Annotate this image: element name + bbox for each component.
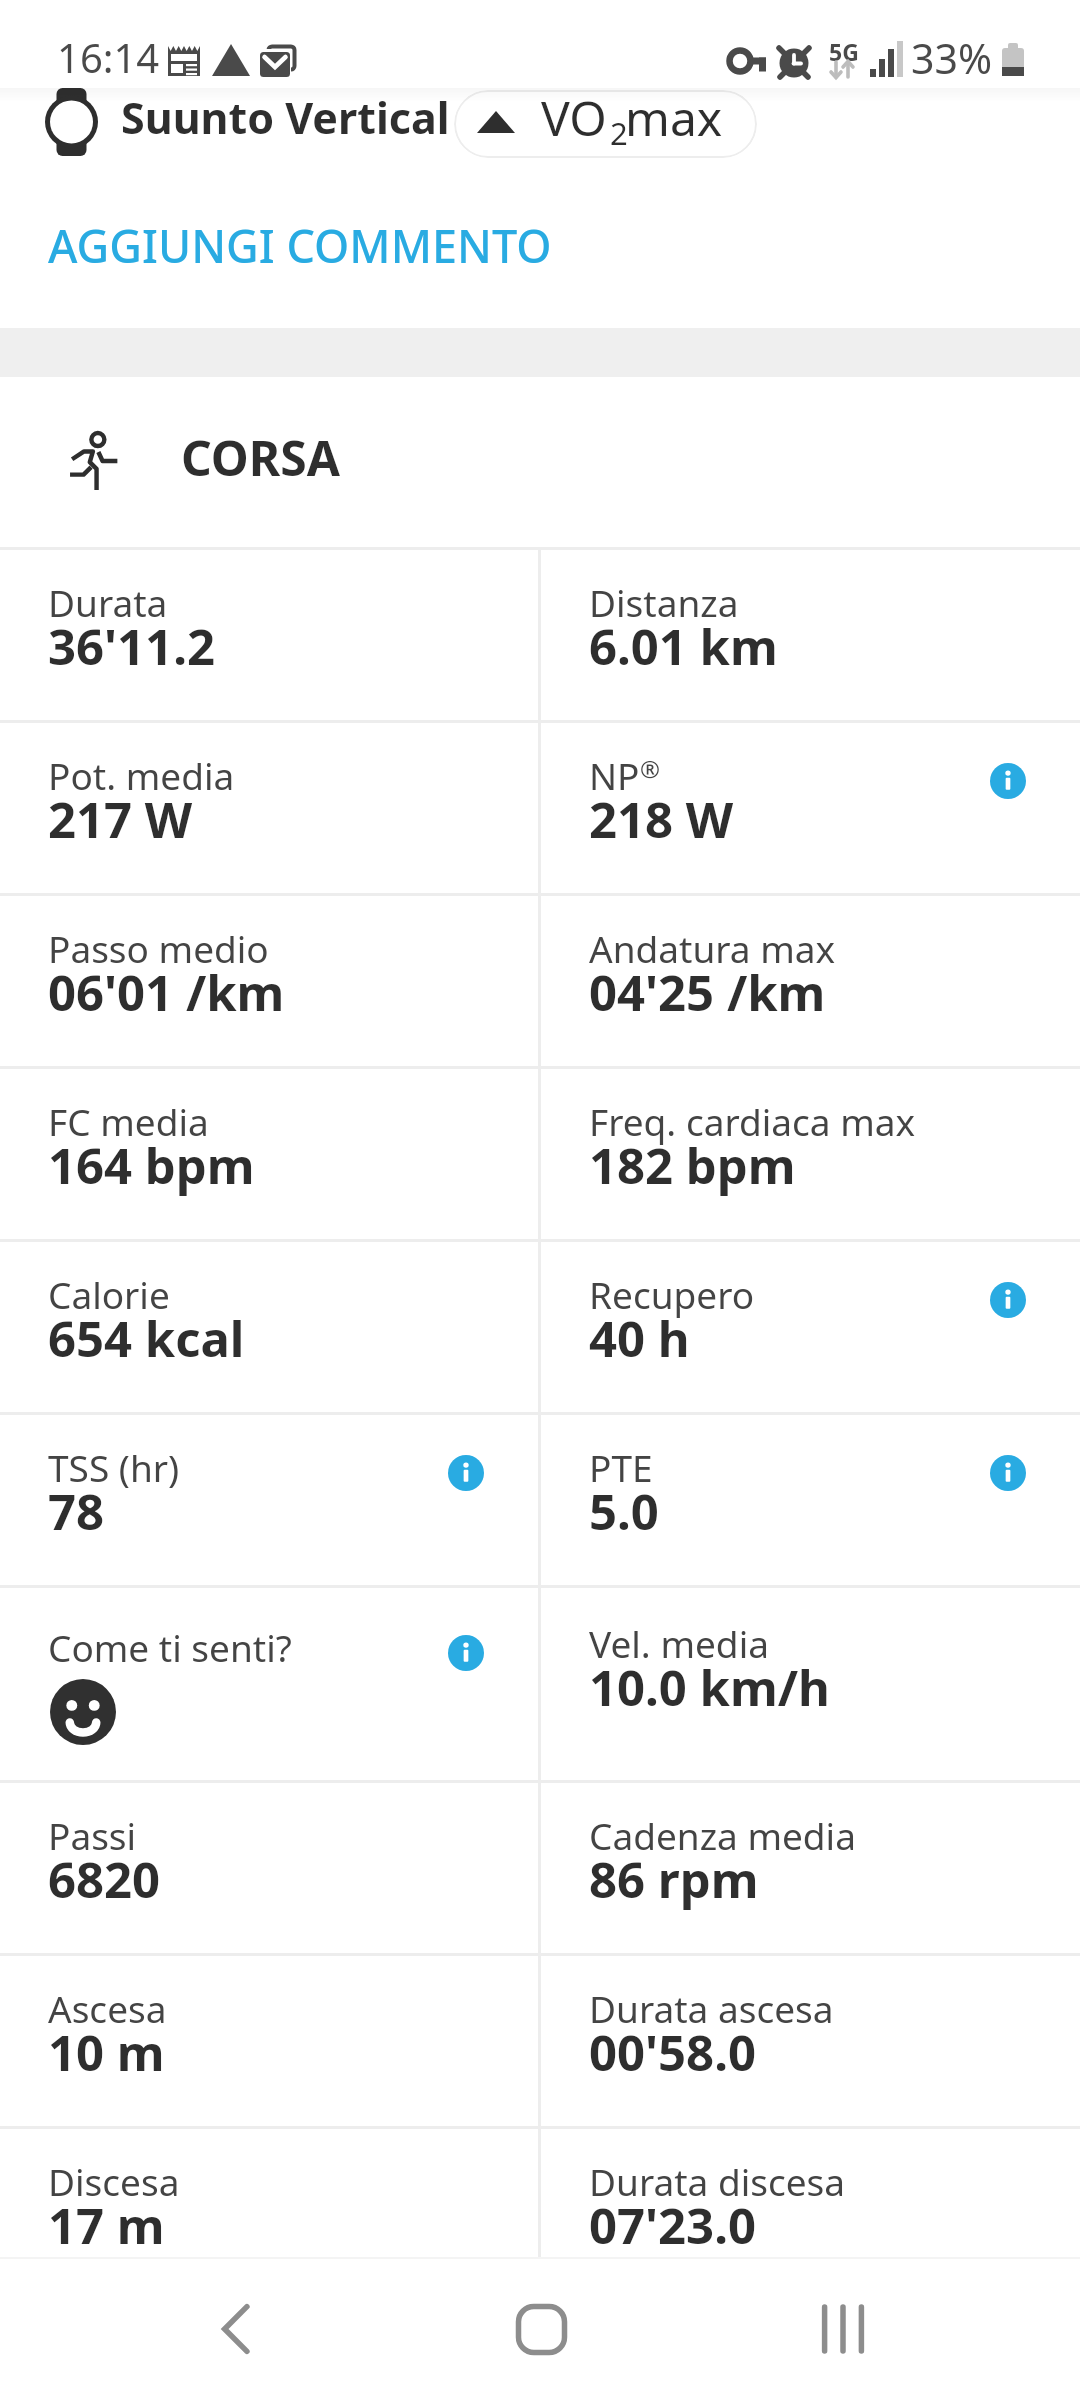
button[interactable]: Discesa [0, 2129, 538, 2299]
staticText: Recupero [589, 1269, 755, 1319]
button[interactable]: Andatura max [541, 896, 1080, 1066]
button[interactable]: Info [990, 1282, 1026, 1318]
staticText: 86 rpm [589, 1846, 759, 1913]
staticText: CORSA [181, 425, 340, 490]
staticText: 164 bpm [48, 1132, 255, 1199]
staticText: 40 h [589, 1305, 690, 1372]
staticText: TSS (hr) [48, 1442, 180, 1492]
button[interactable]: Watch [45, 88, 98, 156]
button[interactable]: Back [177, 2279, 297, 2379]
button[interactable]: PTE [541, 1415, 1080, 1585]
staticText: 10 m [48, 2019, 165, 2086]
staticText: 218 W [589, 786, 734, 853]
staticText: 6.01 km [589, 613, 778, 680]
staticText: 17 m [48, 2192, 165, 2259]
staticText: 00'58.0 [589, 2019, 756, 2086]
staticText: Cadenza media [589, 1810, 856, 1860]
button[interactable]: Vel. media [541, 1588, 1080, 1780]
staticText: 78 [48, 1478, 105, 1545]
button[interactable]: Info [990, 1455, 1026, 1491]
staticText: 10.0 km/h [589, 1654, 830, 1721]
staticText: Calorie [48, 1269, 170, 1319]
staticText: 06'01 /km [48, 959, 285, 1026]
staticText: VO [541, 90, 607, 150]
staticText: 2 [610, 112, 628, 154]
button[interactable]: Durata ascesa [541, 1956, 1080, 2126]
staticText: 217 W [48, 786, 193, 853]
staticText: 07'23.0 [589, 2192, 756, 2259]
button[interactable]: TSS (hr) [0, 1415, 538, 1585]
staticText: 36'11.2 [48, 613, 215, 680]
button[interactable]: CORSA [0, 377, 1080, 547]
button[interactable]: Recents [783, 2279, 903, 2379]
staticText: Durata ascesa [589, 1983, 834, 2033]
staticText: Freq. cardiaca max [589, 1096, 916, 1146]
button[interactable]: FC media [0, 1069, 538, 1239]
staticText: Passo medio [48, 923, 269, 973]
staticText: 16:14 [57, 30, 160, 84]
staticText: 5.0 [589, 1478, 659, 1545]
button[interactable]: Info [448, 1635, 484, 1671]
button[interactable]: Home [481, 2279, 601, 2379]
button[interactable]: Calorie [0, 1242, 538, 1412]
staticText: Ascesa [48, 1983, 167, 2033]
staticText: Durata discesa [589, 2156, 846, 2206]
staticText: Discesa [48, 2156, 180, 2206]
staticText: FC media [48, 1096, 209, 1146]
button[interactable]: NP [541, 723, 1080, 893]
button[interactable]: Cadenza media [541, 1783, 1080, 1953]
button[interactable]: Durata [0, 550, 538, 720]
button[interactable]: Info [448, 1455, 484, 1491]
staticText: Suunto Vertical [121, 88, 450, 147]
staticText: ® [640, 752, 660, 785]
staticText: 33% [911, 30, 992, 86]
staticText: Passi [48, 1810, 137, 1860]
staticText: Durata [48, 577, 168, 627]
button[interactable]: Pot. media [0, 723, 538, 893]
staticText: PTE [589, 1442, 653, 1492]
button[interactable]: Freq. cardiaca max [541, 1069, 1080, 1239]
button[interactable]: Ascesa [0, 1956, 538, 2126]
staticText: 5G [829, 36, 859, 67]
staticText: NP [589, 750, 640, 800]
button[interactable]: Durata discesa [541, 2129, 1080, 2299]
button[interactable]: Info [990, 763, 1026, 799]
staticText: Pot. media [48, 750, 235, 800]
button[interactable]: Passo medio [0, 896, 538, 1066]
staticText: Andatura max [589, 923, 836, 973]
staticText: max [625, 90, 723, 150]
staticText: AGGIUNGI COMMENTO [48, 215, 552, 276]
button[interactable]: VO [454, 90, 757, 158]
staticText: Distanza [589, 577, 739, 627]
button[interactable]: Distanza [541, 550, 1080, 720]
staticText: 6820 [48, 1846, 161, 1913]
staticText: Vel. media [589, 1618, 769, 1668]
staticText: 04'25 /km [589, 959, 826, 1026]
button[interactable]: Recupero [541, 1242, 1080, 1412]
button[interactable]: Come ti senti? [0, 1588, 538, 1780]
button[interactable]: AGGIUNGI COMMENTO [0, 191, 1080, 328]
staticText: 182 bpm [589, 1132, 796, 1199]
staticText: Come ti senti? [48, 1622, 292, 1672]
staticText: 654 kcal [48, 1305, 245, 1372]
button[interactable]: Passi [0, 1783, 538, 1953]
